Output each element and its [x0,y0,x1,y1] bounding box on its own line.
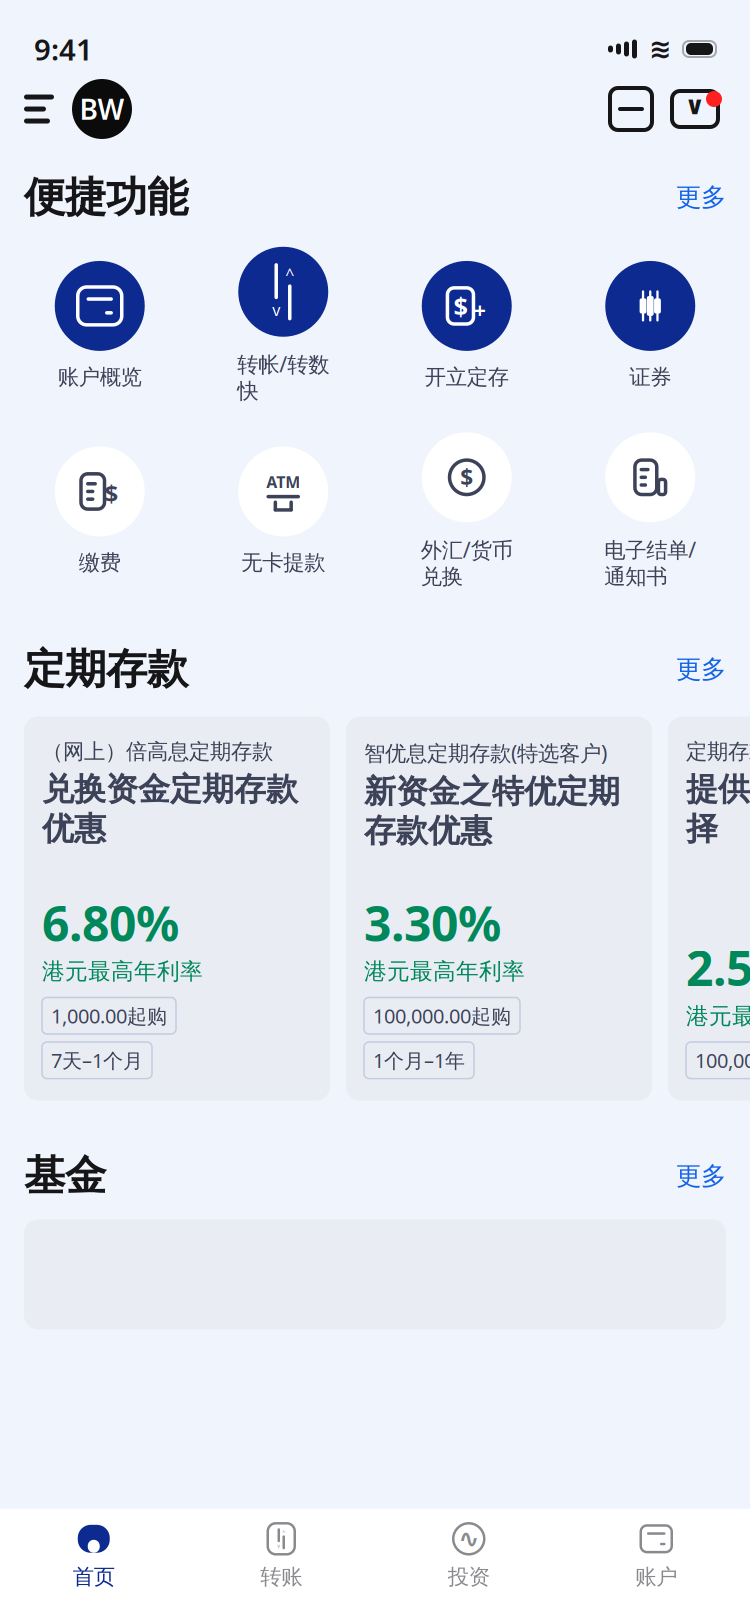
staticText: 证券 [629,364,671,390]
staticText: ≋ [649,34,671,64]
staticText: 缴费 [79,549,121,576]
staticText: 开立定存 [425,364,509,390]
staticText: 提供多种货币之选择 [686,770,750,848]
staticText: 港元最高年利率 [364,958,525,985]
staticText: 账户概览 [58,364,142,390]
staticText: 1个月–1年 [373,1047,465,1074]
staticText: 电子结单/通知书 [604,535,696,590]
staticText: v [272,299,280,320]
button[interactable]: v [187,1509,375,1590]
button[interactable]: 定期存款 [668,717,750,1101]
staticText: $ [460,462,473,492]
staticText: 定期存款 [24,644,188,695]
button[interactable]: （网上）倍高息定期存款 [24,717,330,1101]
staticText: 1,000.00起购 [51,1002,167,1029]
staticText: 港元最高年利率 [686,1002,750,1030]
staticText: ∨ [684,91,705,120]
staticText: 便捷功能 [24,172,188,223]
button[interactable]: 首页 [0,1509,187,1590]
staticText: 9:41 [34,29,93,68]
button[interactable]: v [191,247,375,404]
staticText: 港元最高年利率 [42,958,203,985]
staticText: 2.50% [686,935,750,999]
button[interactable]: $ [375,261,558,390]
staticText: + [474,296,486,324]
staticText: 100,000.00起购 [695,1047,750,1074]
button[interactable]: Menu [24,87,60,131]
button[interactable]: 账户概览 [8,261,191,390]
button[interactable]: 证券 [558,261,742,390]
staticText: 无卡提款 [241,549,325,576]
staticText: 转帐/转数快 [237,350,329,404]
staticText: 兑换资金定期存款优惠 [42,770,298,848]
staticText: 更多 [676,654,726,685]
staticText: ∿ [458,1524,479,1553]
button[interactable]: ∿ [375,1509,562,1590]
staticText: 智优息定期存款(特选客户) [364,739,607,767]
button[interactable]: $ [375,432,558,590]
staticText: 转账 [260,1564,302,1590]
button[interactable]: ATM [191,446,375,576]
staticText: ^ [282,1528,285,1535]
staticText: ^ [285,263,294,284]
staticText: 更多 [676,1160,726,1191]
staticText: 首页 [73,1564,115,1590]
button[interactable]: 更多 [676,182,726,213]
staticText: （网上）倍高息定期存款 [42,739,273,765]
button[interactable]: 智优息定期存款(特选客户) [346,717,652,1101]
staticText: 新资金之特优定期存款优惠 [364,772,620,850]
staticText: 账户 [635,1564,677,1590]
button[interactable]: 电子结单/通知书 [558,432,742,590]
staticText: 外汇/货币兑换 [421,535,513,590]
button[interactable]: 账户 [562,1509,750,1590]
staticText: 投资 [448,1564,490,1590]
button[interactable]: $ [8,446,191,576]
staticText: BW [79,90,124,128]
staticText: 6.80% [42,891,179,955]
button[interactable]: 更多 [676,654,726,685]
button[interactable]: Messages [668,82,726,136]
staticText: v [277,1542,280,1549]
staticText: 更多 [676,182,726,213]
staticText: 定期存款 [686,739,750,765]
staticText: 基金 [24,1151,106,1201]
staticText: 100,000.00起购 [373,1002,511,1029]
button[interactable]: Scan [604,82,658,136]
staticText: 3.30% [364,891,501,955]
staticText: $ [453,289,467,323]
staticText: ATM [266,471,300,493]
staticText: $ [104,477,118,509]
button[interactable]: 更多 [676,1160,726,1191]
button[interactable]: BW [72,79,132,139]
staticText: 7天–1个月 [51,1047,143,1074]
